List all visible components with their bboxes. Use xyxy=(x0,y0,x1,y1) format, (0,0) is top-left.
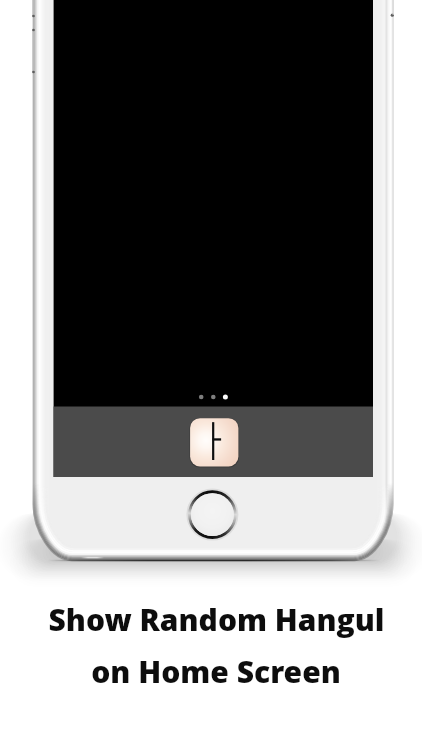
button[interactable]: Home xyxy=(188,490,237,539)
button[interactable]: Random Hangul app icon xyxy=(190,418,239,467)
button[interactable]: on Home Screen xyxy=(5,651,422,692)
staticText: Show Random Hangul xyxy=(48,599,385,640)
button[interactable]: Home screen page 3 of 3 xyxy=(195,390,231,404)
staticText: on Home Screen xyxy=(91,651,341,692)
button[interactable]: Show Random Hangul xyxy=(5,599,422,640)
